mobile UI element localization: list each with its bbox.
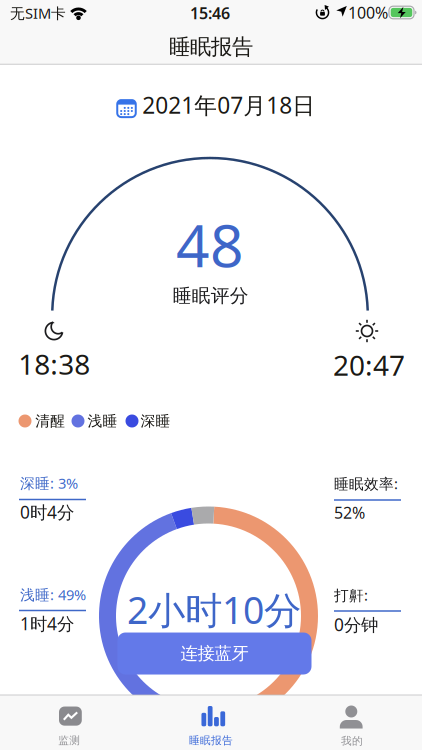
staticText: 睡眠评分 bbox=[173, 284, 249, 307]
staticText: 0时4分 bbox=[20, 500, 74, 523]
button[interactable]: 我的 bbox=[282, 695, 422, 750]
staticText: 20:47 bbox=[333, 346, 405, 384]
staticText: 监测 bbox=[58, 734, 80, 747]
button[interactable]: 2021年07月18日 bbox=[117, 90, 315, 120]
button[interactable]: 监测 bbox=[0, 695, 140, 750]
staticText: 52% bbox=[334, 502, 365, 523]
staticText: 浅睡: 49% bbox=[20, 585, 86, 604]
staticText: 无SIM卡 bbox=[10, 3, 66, 23]
staticText: 48 bbox=[176, 205, 244, 283]
button[interactable]: 睡眠报告 bbox=[141, 695, 281, 750]
staticText: 清醒 bbox=[35, 412, 65, 430]
staticText: 连接蓝牙 bbox=[180, 643, 248, 664]
staticText: 100% bbox=[348, 2, 388, 23]
staticText: 2021年07月18日 bbox=[142, 90, 315, 120]
staticText: 2小时10分 bbox=[127, 585, 301, 634]
staticText: 睡眠报告 bbox=[189, 734, 233, 747]
button[interactable]: 连接蓝牙 bbox=[117, 632, 311, 674]
staticText: 我的 bbox=[341, 734, 363, 747]
staticText: 深睡 bbox=[141, 412, 171, 430]
staticText: 1时4分 bbox=[20, 612, 74, 635]
staticText: 15:46 bbox=[190, 2, 230, 24]
staticText: 深睡: 3% bbox=[20, 473, 78, 493]
staticText: 浅睡 bbox=[87, 412, 117, 430]
staticText: 打鼾: bbox=[334, 585, 368, 605]
staticText: 睡眠报告 bbox=[169, 34, 253, 60]
staticText: 睡眠效率: bbox=[334, 474, 398, 493]
staticText: 0分钟 bbox=[334, 613, 378, 636]
staticText: 18:38 bbox=[18, 345, 90, 383]
